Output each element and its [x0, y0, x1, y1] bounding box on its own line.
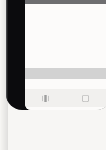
button[interactable]: Recents: [36, 89, 54, 107]
button[interactable]: Home: [76, 89, 94, 107]
